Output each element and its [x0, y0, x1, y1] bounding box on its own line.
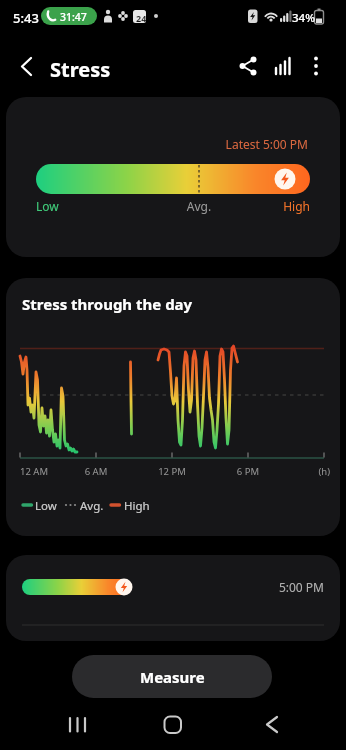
- staticText: Measure: [140, 667, 205, 687]
- staticText: Avg.: [80, 498, 104, 514]
- staticText: Stress: [50, 56, 111, 83]
- button[interactable]: Measure: [72, 655, 272, 698]
- staticText: Avg.: [159, 198, 239, 214]
- button[interactable]: [252, 706, 292, 744]
- staticText: High: [36, 198, 310, 214]
- staticText: 12 AM: [20, 465, 49, 478]
- staticText: (h): [260, 465, 330, 478]
- button[interactable]: [303, 51, 331, 81]
- button[interactable]: [153, 706, 193, 744]
- button[interactable]: [269, 51, 299, 81]
- staticText: 6 PM: [218, 465, 278, 478]
- staticText: 24: [136, 12, 147, 24]
- staticText: High: [124, 498, 150, 514]
- staticText: 31:47: [60, 10, 87, 24]
- staticText: Stress through the day: [22, 294, 193, 314]
- button[interactable]: [10, 52, 42, 82]
- staticText: Low: [36, 198, 59, 214]
- staticText: 34%: [292, 10, 315, 26]
- staticText: 5:43: [13, 9, 39, 27]
- staticText: Low: [35, 498, 57, 514]
- staticText: 12 PM: [142, 465, 202, 478]
- button[interactable]: [233, 51, 263, 81]
- staticText: 6 AM: [66, 465, 126, 478]
- button[interactable]: [6, 555, 340, 641]
- staticText: Latest 5:00 PM: [6, 136, 308, 152]
- button[interactable]: [58, 706, 98, 744]
- staticText: 5:00 PM: [22, 579, 324, 595]
